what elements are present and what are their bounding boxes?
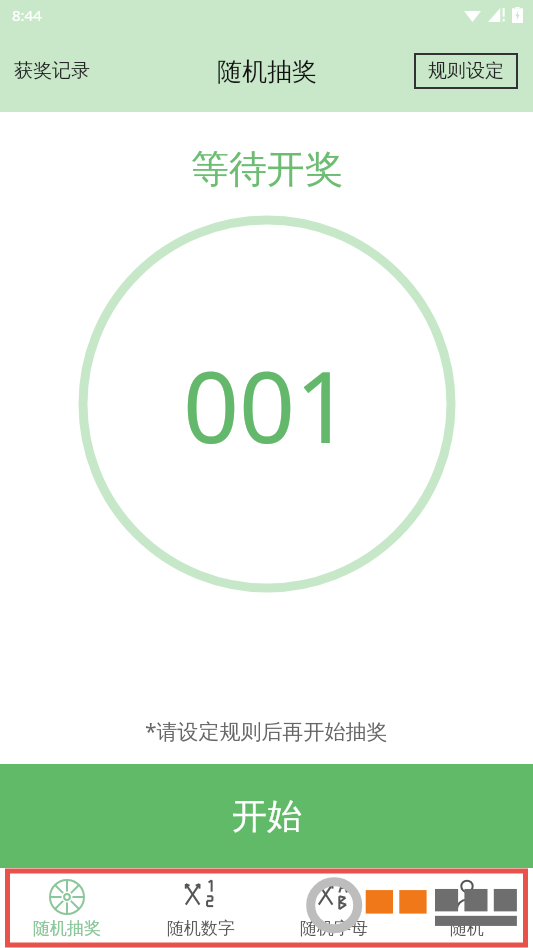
button[interactable]: 随机字母 xyxy=(267,868,400,948)
staticText: 规则设定 xyxy=(428,59,504,83)
staticText: 8:44 xyxy=(12,5,42,25)
staticText: 开始 xyxy=(232,794,302,838)
button[interactable]: 随机 xyxy=(400,868,533,948)
button[interactable]: 获奖记录 xyxy=(0,49,104,93)
staticText: *请设定规则后再开始抽奖 xyxy=(145,717,388,746)
staticText: 随机 xyxy=(450,918,484,939)
button[interactable]: 随机抽奖 xyxy=(0,868,134,948)
button[interactable]: 随机数字 xyxy=(134,868,267,948)
staticText: 001 xyxy=(183,338,352,471)
button[interactable]: 开始 xyxy=(0,764,533,868)
staticText: 随机字母 xyxy=(300,918,368,939)
staticText: 随机数字 xyxy=(167,918,235,939)
staticText: 随机抽奖 xyxy=(217,56,317,87)
staticText: 等待开奖 xyxy=(191,145,343,193)
button[interactable]: 规则设定 xyxy=(414,53,518,89)
staticText: 随机抽奖 xyxy=(33,918,101,939)
staticText: 获奖记录 xyxy=(14,59,90,83)
